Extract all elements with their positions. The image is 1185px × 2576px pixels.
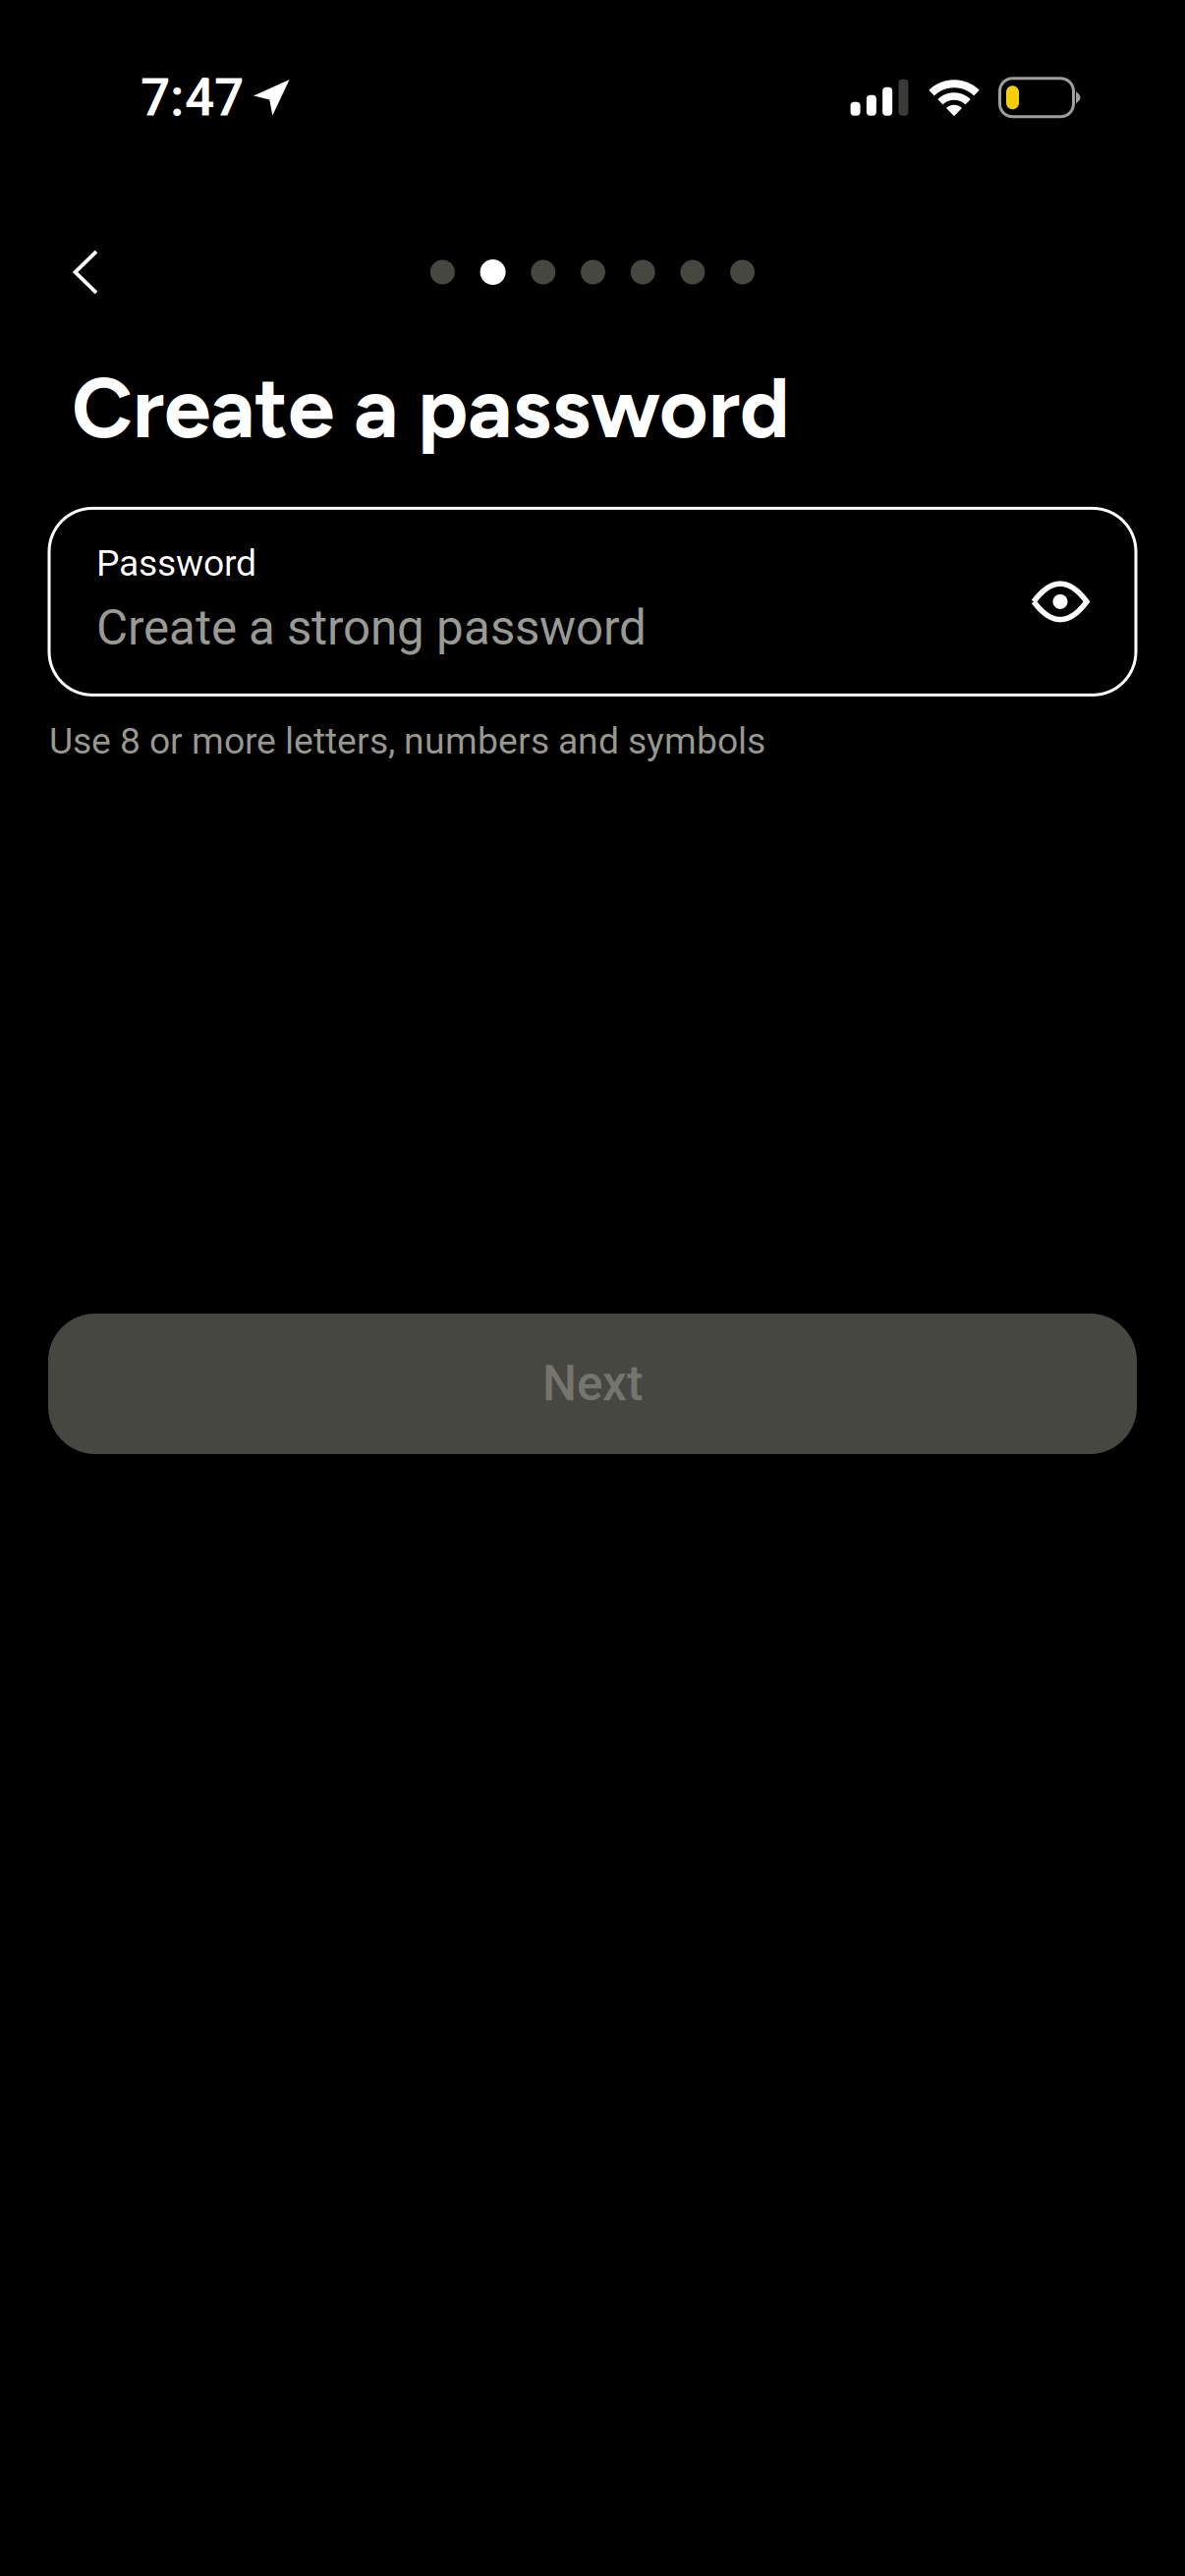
button[interactable]: Show password bbox=[1013, 554, 1107, 649]
staticText: Password bbox=[96, 542, 256, 585]
staticText: Create a strong password bbox=[96, 599, 647, 656]
staticText: 7:47 bbox=[141, 67, 244, 128]
button[interactable]: Password bbox=[96, 508, 1013, 695]
button[interactable]: Next bbox=[48, 1314, 1137, 1454]
button[interactable]: Back bbox=[38, 225, 133, 319]
staticText: Next bbox=[542, 1355, 643, 1412]
staticText: Use 8 or more letters, numbers and symbo… bbox=[49, 720, 765, 762]
staticText: Create a password bbox=[72, 358, 790, 458]
